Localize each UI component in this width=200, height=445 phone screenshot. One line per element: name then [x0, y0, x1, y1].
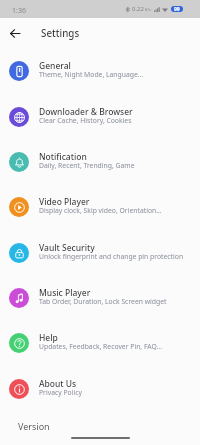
staticText: 0.22 [132, 5, 144, 13]
staticText: Downloader & Browser [39, 106, 133, 118]
staticText: K/s [145, 7, 151, 12]
button[interactable]: Notification [0, 140, 200, 184]
staticText: About Us [39, 378, 77, 390]
staticText: General [39, 60, 71, 72]
button[interactable]: Video Player [0, 185, 200, 229]
button[interactable]: General [0, 49, 200, 93]
staticText: Clear Cache, History, Cookies [39, 116, 132, 125]
button[interactable]: Music Player [0, 276, 200, 320]
staticText: Updates, Feedback, Recover Pin, FAQ... [39, 342, 163, 351]
staticText: Daily, Recent, Trending, Game [39, 161, 135, 170]
staticText: Tab Order, Duration, Lock Screen widget [39, 297, 167, 306]
staticText: Theme, Night Mode, Language... [39, 70, 144, 79]
staticText: Settings [41, 27, 80, 40]
staticText: Version [18, 420, 50, 432]
staticText: Privacy Policy [39, 388, 82, 397]
staticText: 1:36 [12, 6, 26, 16]
staticText: Notification [39, 151, 87, 163]
staticText: Vault Security [39, 242, 95, 254]
staticText: Help [39, 332, 58, 344]
button[interactable]: Downloader & Browser [0, 95, 200, 139]
staticText: Display clock, Skip video, Orientation..… [39, 206, 162, 215]
staticText: 99 [174, 6, 180, 12]
staticText: Video Player [39, 196, 90, 208]
button[interactable]: Back [4, 22, 26, 44]
staticText: Unlock fingerprint and change pin protec… [39, 252, 184, 261]
button[interactable]: Help [0, 321, 200, 365]
button[interactable]: Vault Security [0, 231, 200, 275]
staticText: Music Player [39, 287, 91, 299]
button[interactable]: About Us [0, 367, 200, 411]
